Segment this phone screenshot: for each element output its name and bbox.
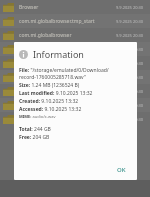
staticText: 9.9.2025 20:30 xyxy=(116,117,144,122)
staticText: com.mi.globalbrowser.tmp_start xyxy=(19,18,116,25)
button[interactable]: Pictures xyxy=(0,112,150,126)
staticText: 9.9.2025 20:30 xyxy=(116,5,144,10)
button[interactable]: DCIM xyxy=(0,42,150,56)
button[interactable]: OK xyxy=(111,162,132,178)
staticText: MIME: audio/x-wav xyxy=(19,114,56,119)
staticText: Total: 244 GB xyxy=(19,126,51,133)
staticText: 9.9.2025 20:30 xyxy=(116,61,144,66)
button[interactable]: com.mi.globalbrowser.tmp_start xyxy=(0,14,150,28)
staticText: Size: 1.24 MB (1236524 B) xyxy=(19,82,80,89)
staticText: DCIM xyxy=(19,46,116,53)
staticText: Pictures xyxy=(19,116,116,123)
staticText: File: "/storage/emulated/0/Download/reco… xyxy=(19,67,132,81)
button[interactable]: Music xyxy=(0,98,150,112)
staticText: 9.9.2025 20:30 xyxy=(116,75,144,80)
staticText: Accessed: 9.10.2025 13:32 xyxy=(19,106,82,113)
staticText: OK xyxy=(117,166,126,174)
staticText: 9.9.2025 20:30 xyxy=(116,103,144,108)
staticText: Music xyxy=(19,102,116,109)
button[interactable]: Download xyxy=(0,70,150,84)
button[interactable]: Movies xyxy=(0,84,150,98)
staticText: 9.9.2025 20:30 xyxy=(116,89,144,94)
staticText: Free: 204 GB xyxy=(19,134,50,141)
staticText: Movies xyxy=(19,88,116,95)
staticText: Created: 9.10.2025 13:32 xyxy=(19,98,79,105)
staticText: com.mi.globalbrowser xyxy=(19,32,116,39)
button[interactable]: Browser xyxy=(0,0,150,14)
staticText: 9.9.2025 20:30 xyxy=(116,33,144,38)
button[interactable]: com.mi.globalbrowser xyxy=(0,28,150,42)
button[interactable]: Documents xyxy=(0,56,150,70)
staticText: Browser xyxy=(19,4,116,11)
staticText: 9.9.2025 20:30 xyxy=(116,19,144,24)
staticText: 9.9.2025 20:30 xyxy=(116,47,144,52)
staticText: Information xyxy=(33,48,84,60)
staticText: Last modified: 9.10.2025 13:32 xyxy=(19,90,93,97)
staticText: Download xyxy=(19,74,116,81)
